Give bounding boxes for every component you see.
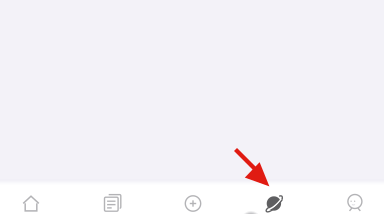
button[interactable]: Explore — [233, 188, 314, 214]
button[interactable]: Documents — [73, 188, 154, 214]
button[interactable]: Create — [152, 188, 233, 214]
button[interactable]: Profile — [314, 188, 384, 214]
button[interactable]: Home — [0, 188, 71, 214]
